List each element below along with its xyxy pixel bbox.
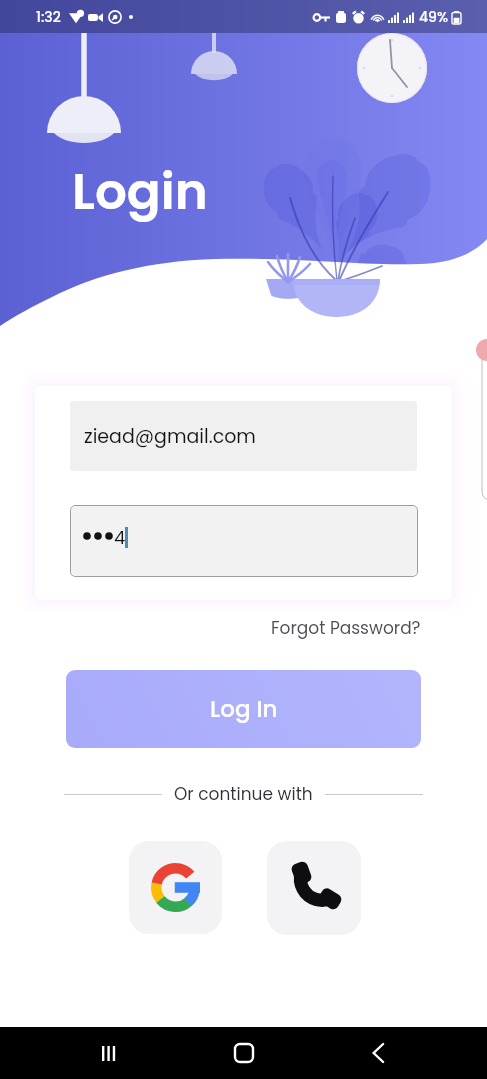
button[interactable]: 4: [70, 505, 418, 577]
staticText: Or continue with: [174, 782, 313, 806]
staticText: 1:32: [36, 7, 61, 27]
button[interactable]: Back: [352, 1027, 404, 1079]
staticText: 4: [114, 525, 126, 550]
button[interactable]: Home: [218, 1027, 270, 1079]
button[interactable]: Sign in with Google: [129, 841, 222, 934]
button[interactable]: Forgot Password?: [271, 616, 487, 640]
staticText: 49%: [419, 7, 449, 27]
staticText: ziead@gmail.com: [84, 423, 256, 450]
button[interactable]: Recent apps: [83, 1027, 135, 1079]
button[interactable]: Sign in with phone: [267, 841, 361, 935]
staticText: Log In: [210, 693, 278, 725]
staticText: Login: [72, 157, 208, 227]
button[interactable]: ziead@gmail.com: [70, 401, 417, 471]
button[interactable]: Log In: [66, 670, 421, 748]
